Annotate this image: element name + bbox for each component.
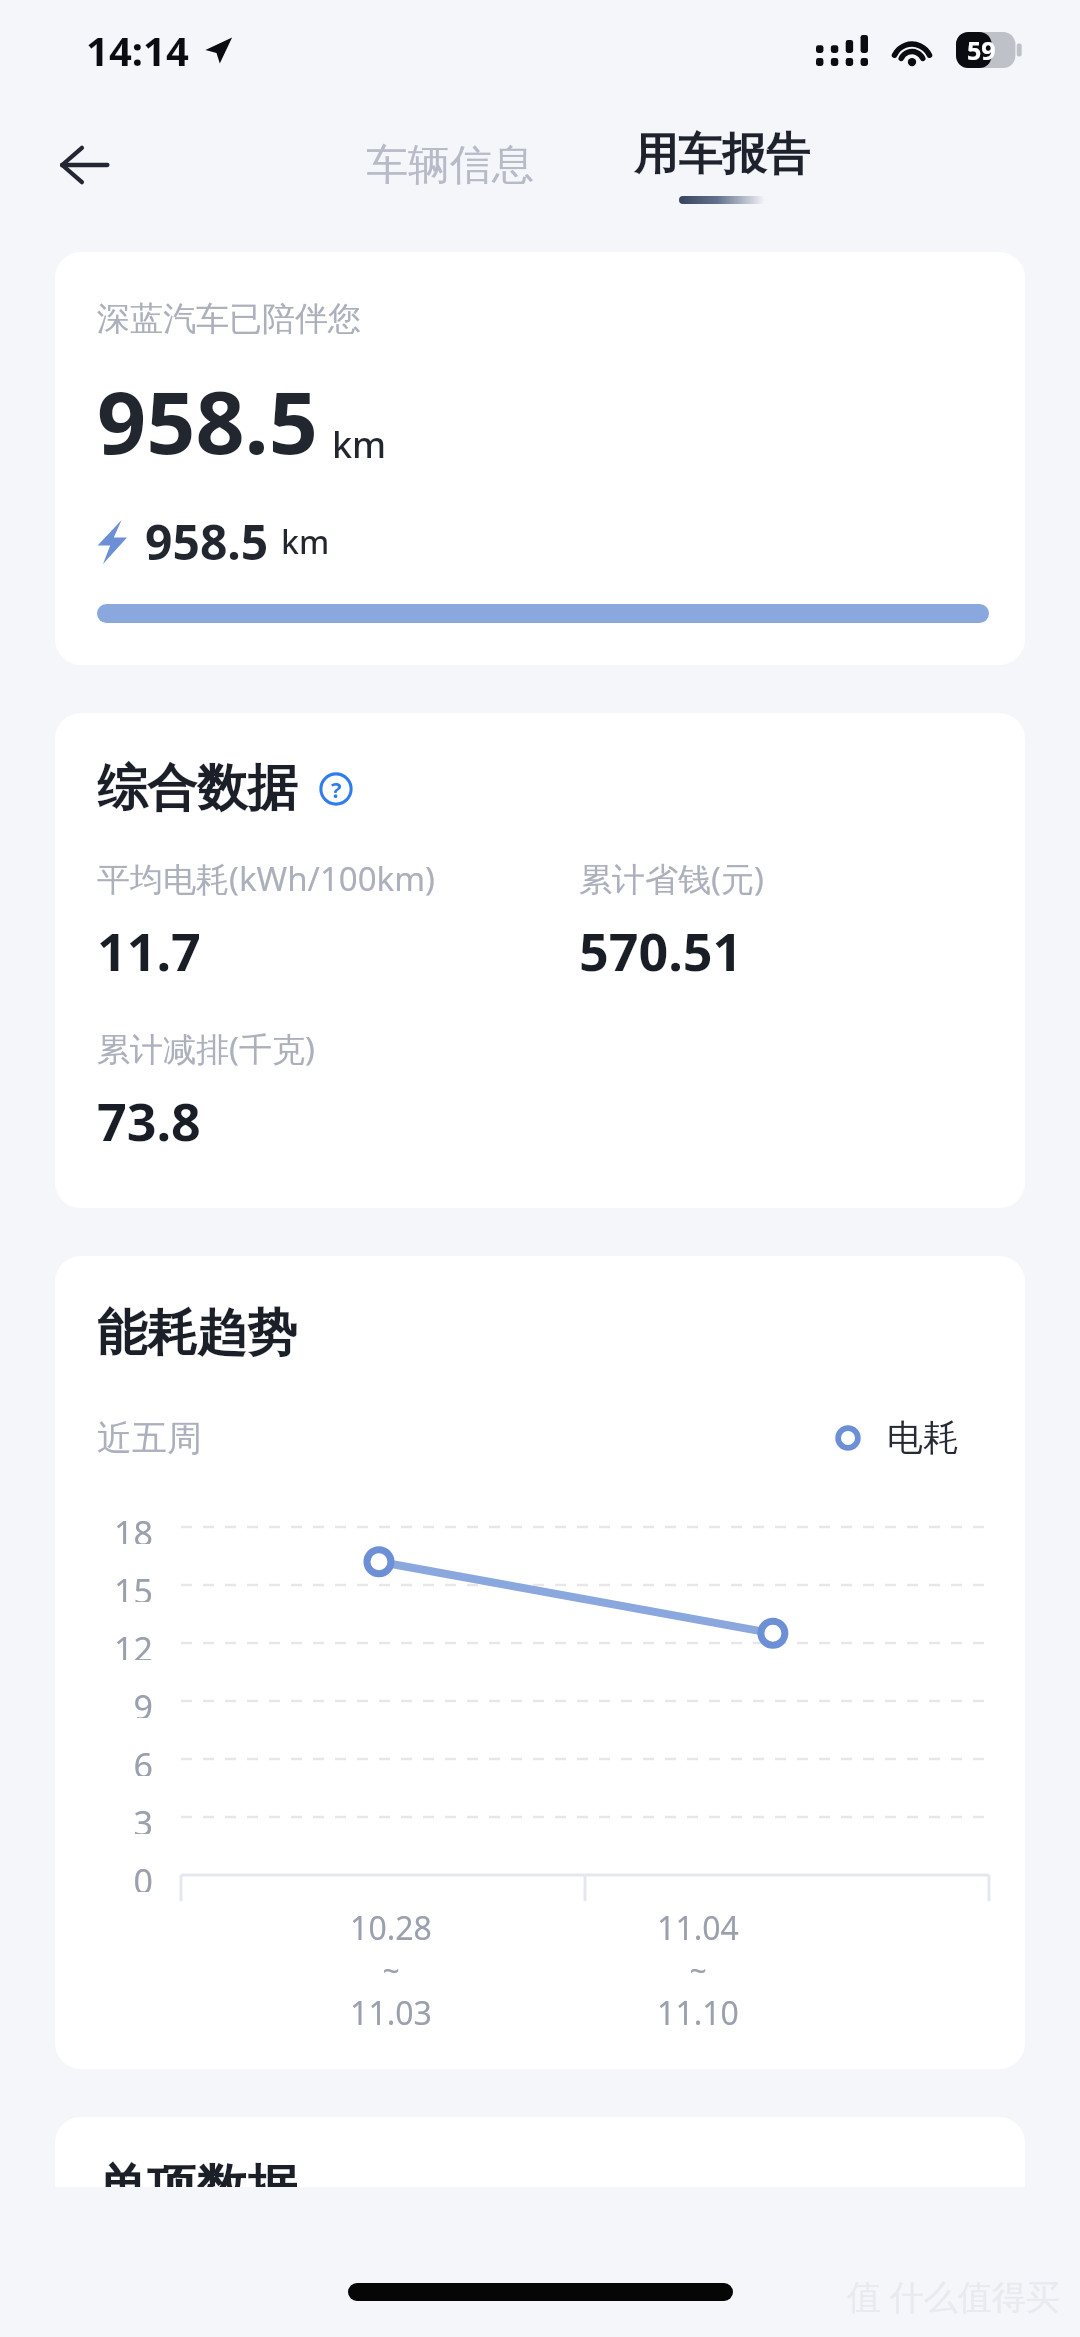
- staticText: 用车报告: [634, 127, 810, 182]
- staticText: 6: [133, 1742, 153, 1776]
- staticText: 14:14: [86, 23, 189, 77]
- staticText: 能耗趋势: [97, 1302, 297, 1365]
- button[interactable]: Back: [36, 117, 132, 213]
- staticText: ~: [689, 1950, 707, 1991]
- staticText: 深蓝汽车已陪伴您: [97, 298, 361, 340]
- staticText: 9: [133, 1684, 153, 1718]
- staticText: 11.10: [657, 1991, 739, 2035]
- staticText: 3: [133, 1800, 153, 1834]
- staticText: 958.5: [145, 509, 269, 574]
- staticText: 570.51: [579, 915, 743, 986]
- staticText: 18: [114, 1510, 153, 1544]
- staticText: 累计省钱(元): [579, 856, 764, 901]
- staticText: 10.28: [350, 1906, 432, 1950]
- button[interactable]: Info: [313, 766, 359, 812]
- staticText: 73.8: [97, 1085, 201, 1156]
- button[interactable]: 车辆信息: [346, 125, 554, 206]
- staticText: 综合数据: [97, 757, 297, 820]
- staticText: km: [332, 420, 387, 469]
- button[interactable]: 深蓝汽车已陪伴您: [55, 252, 1025, 665]
- staticText: 单项数据: [97, 2157, 297, 2187]
- staticText: 59: [967, 33, 996, 67]
- button[interactable]: 单项数据: [55, 2117, 1025, 2187]
- staticText: 11.7: [97, 915, 201, 986]
- staticText: 15: [114, 1568, 153, 1602]
- staticText: km: [281, 520, 330, 564]
- staticText: 车辆信息: [366, 139, 534, 192]
- staticText: 11.03: [350, 1991, 432, 2035]
- staticText: 平均电耗(kWh/100km): [97, 856, 435, 901]
- button[interactable]: 电耗: [827, 1409, 967, 1466]
- staticText: 累计减排(千克): [97, 1026, 315, 1071]
- staticText: 12: [114, 1626, 153, 1660]
- staticText: 958.5: [97, 362, 318, 479]
- staticText: ~: [382, 1950, 400, 1991]
- staticText: 0: [133, 1858, 153, 1892]
- button[interactable]: 能耗趋势: [55, 1256, 1025, 2069]
- button[interactable]: 综合数据: [55, 713, 1025, 1208]
- staticText: 值 什么值得买: [847, 2273, 1060, 2319]
- staticText: 电耗: [887, 1415, 959, 1460]
- staticText: ?: [331, 774, 342, 804]
- staticText: 近五周: [97, 1416, 202, 1460]
- button[interactable]: 用车报告: [614, 121, 830, 210]
- staticText: 11.04: [657, 1906, 739, 1950]
